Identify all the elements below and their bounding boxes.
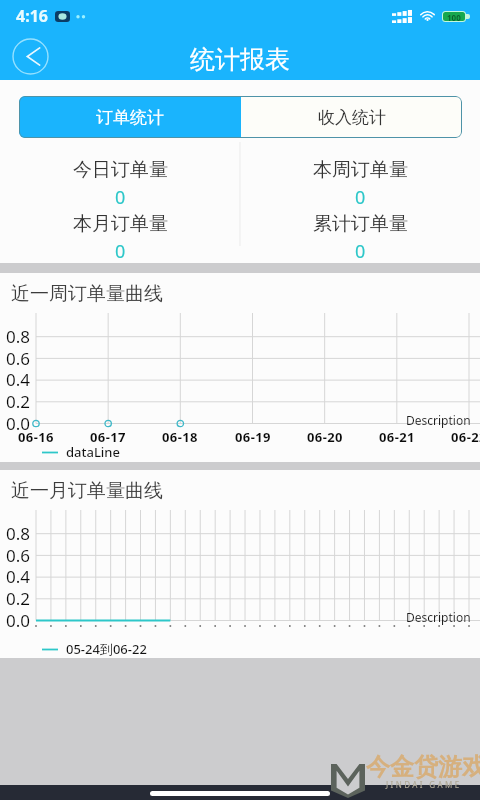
staticText: 0	[355, 185, 366, 210]
staticText: 0	[115, 239, 126, 263]
staticText: Description	[406, 412, 471, 428]
button[interactable]: 累计订单量	[240, 212, 480, 263]
staticText: 累计订单量	[313, 212, 408, 236]
staticText: 0.2	[6, 587, 31, 610]
staticText: 0.0	[6, 609, 31, 632]
staticText: 06-19	[235, 428, 271, 446]
staticText: 近一月订单量曲线	[11, 479, 163, 503]
staticText: 0.2	[6, 390, 31, 413]
staticText: 06-21	[379, 428, 415, 446]
button[interactable]: 本周订单量	[240, 156, 480, 212]
staticText: 06-22	[451, 428, 480, 446]
staticText: 0	[355, 239, 366, 263]
staticText: 0.4	[6, 565, 31, 588]
staticText: 100	[447, 12, 461, 21]
staticText: 近一周订单量曲线	[11, 282, 163, 306]
button[interactable]: 收入统计	[241, 96, 462, 138]
staticText: 订单统计	[96, 107, 164, 128]
staticText: 4:16	[16, 5, 48, 27]
staticText: 05-24到06-22	[66, 640, 147, 658]
staticText: 0.6	[6, 347, 31, 370]
staticText: JINDAI GAME	[386, 779, 462, 790]
staticText: 本周订单量	[313, 158, 408, 182]
button[interactable]: 本月订单量	[0, 212, 240, 263]
staticText: 统计报表	[190, 44, 290, 75]
staticText: 06-17	[90, 428, 126, 446]
button[interactable]: 订单统计	[19, 96, 241, 138]
staticText: dataLine	[66, 443, 120, 461]
staticText: 本月订单量	[73, 212, 168, 236]
staticText: 今金贷游戏	[366, 752, 480, 782]
staticText: 06-16	[18, 428, 54, 446]
staticText: 今日订单量	[73, 158, 168, 182]
staticText: 06-18	[162, 428, 198, 446]
staticText: 收入统计	[318, 107, 386, 128]
staticText: 0.8	[6, 522, 31, 545]
staticText: 0.8	[6, 325, 31, 348]
button[interactable]: 今日订单量	[0, 156, 240, 212]
staticText: 0.6	[6, 544, 31, 567]
staticText: 06-20	[307, 428, 343, 446]
button[interactable]: Back	[12, 38, 49, 75]
staticText: Description	[406, 609, 471, 625]
staticText: 0.4	[6, 368, 31, 391]
staticText: 0.0	[6, 412, 31, 435]
staticText: 0	[115, 185, 126, 210]
